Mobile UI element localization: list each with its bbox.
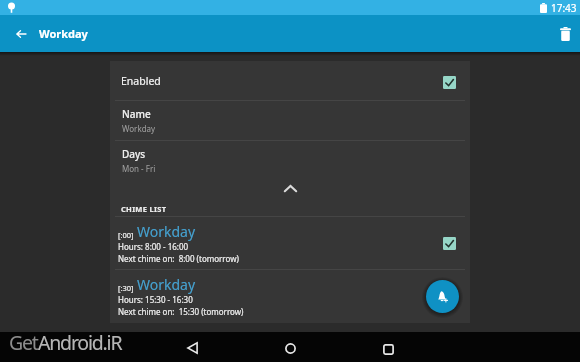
button[interactable]: [:30] (110, 270, 470, 322)
button[interactable]: Back (10, 23, 32, 45)
staticText: Days (122, 147, 146, 161)
staticText: 17:43 (551, 1, 577, 15)
button[interactable]: Back (178, 334, 206, 362)
staticText: Workday (137, 275, 196, 294)
staticText: Android.iR (38, 329, 122, 356)
staticText: Hours: 15:30 - 16:30 (118, 294, 193, 305)
staticText: [:30] (118, 283, 134, 293)
staticText: [:00] (118, 230, 134, 240)
staticText: Mon - Fri (122, 163, 156, 174)
staticText: Workday (39, 26, 88, 41)
staticText: Next chime on: 8:00 (tomorrow) (118, 253, 239, 264)
button[interactable]: Collapse (110, 180, 470, 201)
button[interactable]: Delete (550, 19, 580, 49)
staticText: Enabled (121, 74, 161, 88)
staticText: Next chime on: 15:30 (tomorrow) (118, 306, 244, 317)
button[interactable]: Recent apps (374, 335, 402, 362)
staticText: Name (122, 107, 151, 121)
staticText: CHIME LIST (121, 204, 167, 214)
staticText: Get (9, 329, 38, 356)
button[interactable]: Enabled (110, 61, 470, 100)
staticText: Hours: 8:00 - 16:00 (118, 241, 189, 252)
button[interactable]: Add chime (426, 280, 459, 313)
button[interactable]: Days (110, 141, 470, 180)
staticText: Workday (122, 123, 156, 134)
button[interactable]: [:00] (110, 217, 470, 269)
button[interactable]: Home (276, 334, 304, 362)
staticText: Workday (137, 222, 196, 241)
button[interactable]: Name (110, 101, 470, 140)
